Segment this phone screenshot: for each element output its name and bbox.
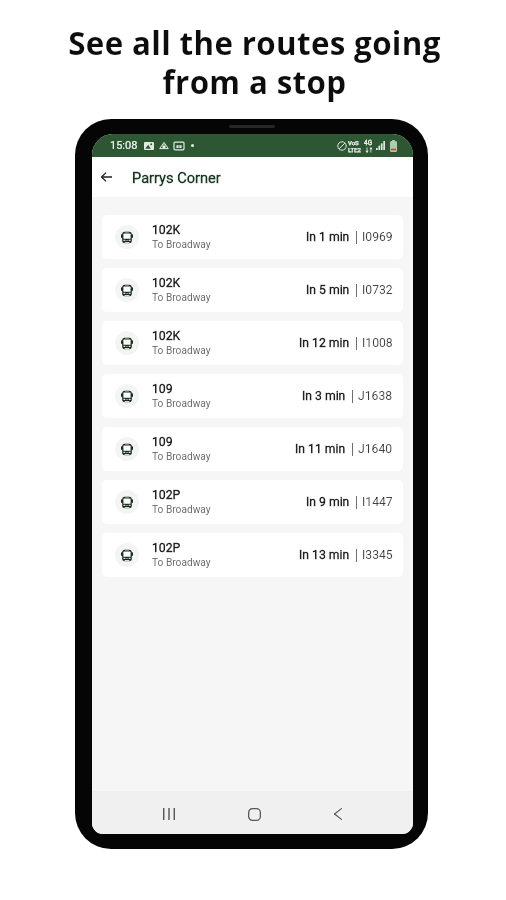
staticText: 109 [152, 382, 173, 396]
staticText: Parrys Corner [132, 169, 221, 186]
staticText: In 11 min [295, 442, 346, 456]
button[interactable]: Recent apps [148, 793, 190, 834]
staticText: J1638 [358, 389, 393, 403]
staticText: 102K [152, 223, 181, 237]
staticText: In 3 min [302, 389, 346, 403]
staticText: See all the routes going from a stop [68, 22, 441, 103]
staticText: To Broadway [152, 504, 211, 516]
staticText: J1640 [358, 442, 393, 456]
staticText: In 12 min [299, 336, 350, 350]
staticText: 102K [152, 329, 181, 343]
staticText: I0969 [362, 230, 393, 244]
staticText: VoS [348, 139, 359, 146]
staticText: I3345 [362, 548, 393, 562]
staticText: I1008 [362, 336, 393, 350]
button[interactable]: 102K [102, 215, 403, 259]
staticText: In 13 min [299, 548, 350, 562]
staticText: I1447 [362, 495, 393, 509]
staticText: To Broadway [152, 292, 211, 304]
staticText: 102P [152, 541, 181, 555]
staticText: To Broadway [152, 398, 211, 410]
staticText: I0732 [362, 283, 393, 297]
staticText: To Broadway [152, 451, 211, 463]
staticText: In 5 min [306, 283, 350, 297]
button[interactable]: 102P [102, 480, 403, 524]
button[interactable]: 102P [102, 533, 403, 577]
button[interactable]: 109 [102, 427, 403, 471]
button[interactable]: Back [317, 793, 359, 834]
staticText: In 1 min [306, 230, 350, 244]
button[interactable]: 102K [102, 321, 403, 365]
staticText: 109 [152, 435, 173, 449]
staticText: 15:08 [110, 139, 138, 152]
staticText: To Broadway [152, 239, 211, 251]
staticText: 4G [364, 139, 373, 147]
staticText: 102K [152, 276, 181, 290]
staticText: To Broadway [152, 345, 211, 357]
staticText: To Broadway [152, 557, 211, 569]
staticText: In 9 min [306, 495, 350, 509]
button[interactable]: Navigate up [93, 164, 119, 190]
button[interactable]: 109 [102, 374, 403, 418]
staticText: LTE2 [348, 146, 361, 153]
button[interactable]: 102K [102, 268, 403, 312]
staticText: 102P [152, 488, 181, 502]
button[interactable]: Home [233, 793, 275, 834]
